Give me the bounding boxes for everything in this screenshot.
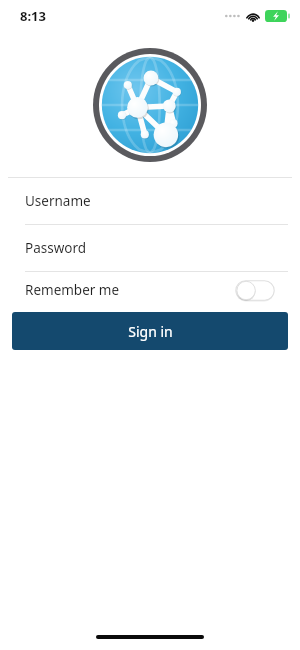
staticText: 8:13: [20, 7, 46, 25]
staticText: Username: [25, 192, 91, 210]
button[interactable]: Remember me toggle: [235, 280, 275, 301]
staticText: Remember me: [25, 281, 120, 299]
button[interactable]: Username: [0, 178, 300, 225]
staticText: Password: [25, 239, 87, 257]
button[interactable]: Password: [0, 225, 300, 272]
staticText: Sign in: [128, 322, 173, 341]
button[interactable]: Sign in: [12, 312, 288, 350]
button[interactable]: Remember me: [0, 272, 300, 308]
